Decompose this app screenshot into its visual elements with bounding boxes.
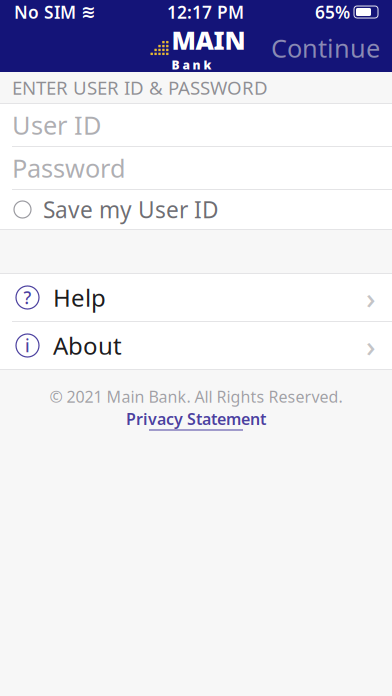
staticText: 12:17 PM: [167, 0, 244, 23]
staticText: MAIN: [171, 23, 245, 57]
staticText: No SIM: [14, 0, 76, 23]
staticText: Save my User ID: [43, 194, 219, 224]
staticText: i: [25, 334, 30, 357]
staticText: B a n k: [171, 57, 211, 73]
staticText: ?: [23, 286, 31, 309]
staticText: Password: [12, 151, 126, 185]
button[interactable]: Save my User ID: [0, 190, 392, 229]
staticText: User ID: [12, 108, 101, 142]
button[interactable]: i: [0, 322, 392, 369]
button[interactable]: Continue: [259, 25, 392, 71]
button[interactable]: Privacy Statement: [126, 408, 266, 430]
staticText: Privacy Statement: [126, 408, 266, 429]
staticText: ≋: [81, 2, 96, 22]
button[interactable]: ?: [0, 274, 392, 321]
staticText: About: [53, 330, 122, 361]
staticText: ›: [366, 278, 376, 317]
staticText: ENTER USER ID & PASSWORD: [12, 75, 268, 100]
staticText: © 2021 Main Bank. All Rights Reserved.: [49, 386, 342, 407]
staticText: ›: [366, 326, 376, 365]
staticText: Continue: [271, 31, 380, 65]
staticText: 65%: [315, 0, 350, 23]
staticText: Help: [53, 282, 106, 313]
